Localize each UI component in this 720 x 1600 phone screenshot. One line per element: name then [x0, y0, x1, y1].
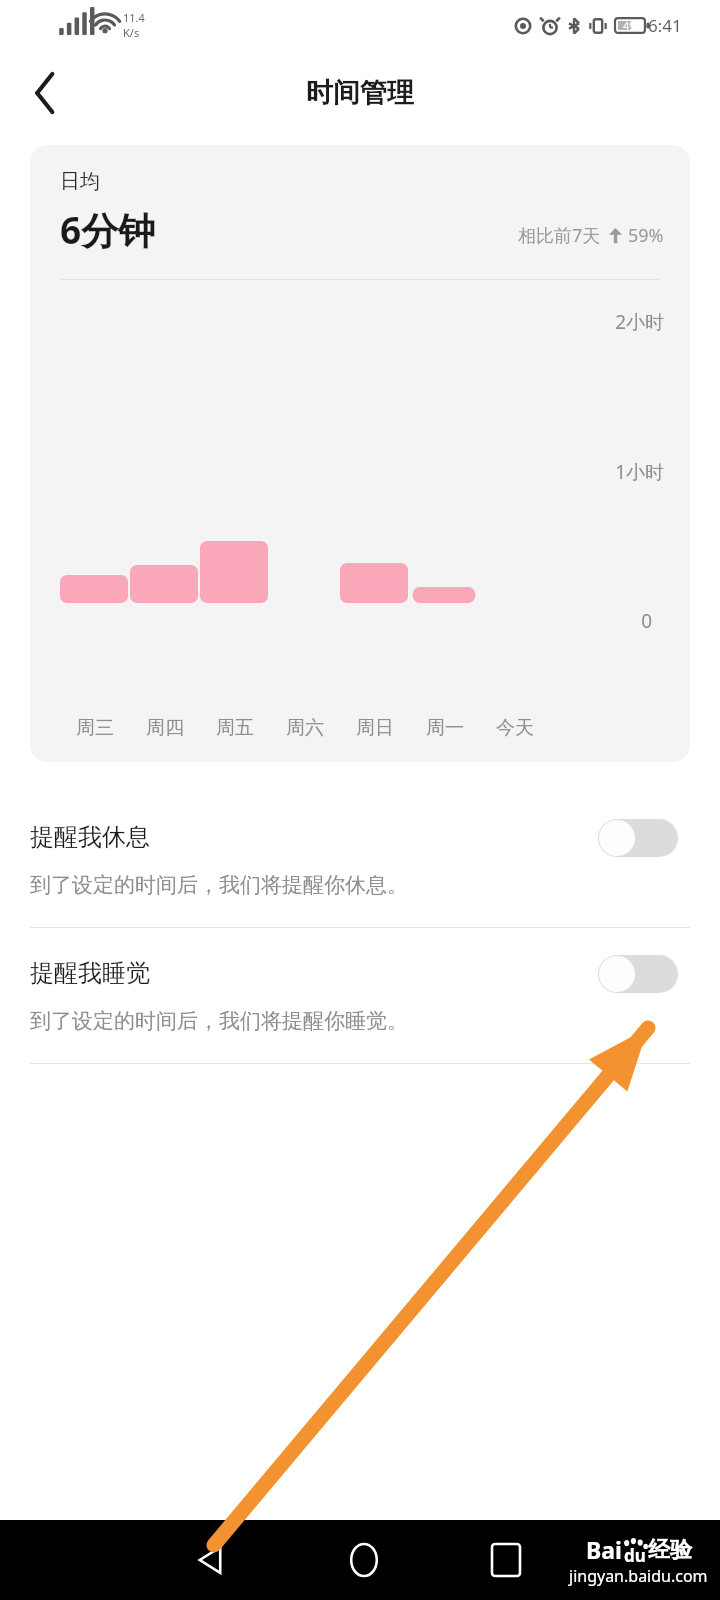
- button[interactable]: 提醒我睡觉: [0, 928, 720, 1063]
- staticText: 今天: [480, 716, 550, 740]
- staticText: 11.4: [123, 10, 145, 25]
- staticText: 6分钟: [60, 204, 156, 255]
- staticText: 周一: [410, 716, 480, 740]
- button[interactable]: 提醒我休息: [0, 792, 720, 927]
- staticText: 周四: [130, 716, 200, 740]
- staticText: 周五: [200, 716, 270, 740]
- staticText: du: [624, 1544, 646, 1567]
- staticText: 相比前7天: [518, 223, 601, 248]
- staticText: 周日: [340, 716, 410, 740]
- button[interactable]: 日均: [30, 145, 690, 762]
- button[interactable]: Home: [332, 1528, 396, 1592]
- staticText: 2小时: [30, 309, 664, 335]
- button[interactable]: Toggle 提醒我睡觉: [598, 955, 678, 993]
- staticText: 6:41: [648, 14, 682, 37]
- staticText: Bai: [586, 1534, 622, 1565]
- staticText: 到了设定的时间后，我们将提醒你休息。: [30, 872, 408, 898]
- staticText: 提醒我休息: [30, 822, 150, 852]
- staticText: 到了设定的时间后，我们将提醒你睡觉。: [30, 1008, 408, 1034]
- staticText: 59%: [628, 223, 664, 248]
- button[interactable]: Toggle 提醒我休息: [598, 819, 678, 857]
- button[interactable]: Recents: [474, 1528, 538, 1592]
- button[interactable]: Back: [178, 1528, 242, 1592]
- staticText: 经验: [648, 1536, 692, 1564]
- staticText: 周六: [270, 716, 340, 740]
- staticText: jingyan.baidu.com: [569, 1565, 708, 1587]
- staticText: 时间管理: [306, 76, 414, 110]
- staticText: 提醒我睡觉: [30, 958, 150, 988]
- staticText: K/s: [123, 25, 140, 40]
- staticText: 日均: [60, 169, 100, 194]
- button[interactable]: Back: [18, 66, 72, 120]
- staticText: 周三: [60, 716, 130, 740]
- staticText: 1小时: [30, 459, 664, 485]
- staticText: 49: [623, 18, 636, 33]
- staticText: 0: [30, 608, 652, 634]
